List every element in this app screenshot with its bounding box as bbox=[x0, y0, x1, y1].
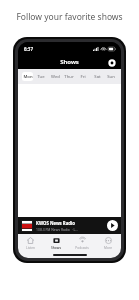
button[interactable]: Sat bbox=[91, 72, 103, 81]
staticText: 6:37 bbox=[24, 46, 33, 52]
staticText: Thur bbox=[64, 74, 74, 80]
staticText: Wed bbox=[51, 74, 60, 80]
button[interactable]: Sun bbox=[105, 72, 117, 81]
button[interactable]: Podcasts bbox=[69, 234, 95, 252]
staticText: KWOS News Radio bbox=[36, 220, 75, 226]
staticText: Sun bbox=[107, 74, 115, 80]
staticText: 108.3 FM News Radio · L... bbox=[36, 227, 78, 232]
staticText: Tue bbox=[37, 74, 45, 80]
button[interactable]: Listen bbox=[18, 234, 43, 252]
staticText: Shows bbox=[51, 246, 61, 250]
staticText: Sat bbox=[94, 74, 101, 80]
staticText: Fri bbox=[80, 74, 86, 80]
staticText: Podcasts bbox=[75, 246, 89, 250]
button[interactable]: Settings bbox=[106, 57, 117, 68]
staticText: Shows bbox=[60, 58, 79, 66]
button[interactable]: Mon bbox=[22, 72, 33, 81]
staticText: Listen bbox=[26, 246, 35, 250]
button[interactable]: Play bbox=[107, 220, 118, 231]
button[interactable]: Tue bbox=[35, 72, 47, 81]
button[interactable]: KWOS News Radio bbox=[18, 217, 121, 234]
staticText: Mon bbox=[23, 74, 33, 80]
staticText: Follow your favorite shows bbox=[16, 11, 123, 23]
button[interactable]: Wed bbox=[49, 72, 61, 81]
button[interactable]: More bbox=[95, 234, 121, 252]
button[interactable]: Shows bbox=[43, 234, 69, 252]
button[interactable]: Fri bbox=[77, 72, 89, 81]
staticText: More bbox=[104, 246, 112, 250]
button[interactable]: Thur bbox=[63, 72, 75, 81]
